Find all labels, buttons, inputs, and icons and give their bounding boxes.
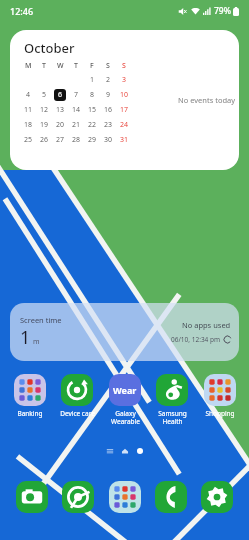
staticText: 27 bbox=[56, 135, 65, 145]
staticText: 15 bbox=[88, 105, 97, 115]
staticText: 4 bbox=[26, 90, 31, 100]
staticText: 23 bbox=[104, 120, 113, 130]
staticText: 21 bbox=[72, 120, 81, 130]
staticText: 14 bbox=[72, 105, 81, 115]
staticText: 25 bbox=[24, 135, 33, 145]
staticText: Device care bbox=[60, 409, 95, 418]
staticText: 9 bbox=[106, 90, 111, 100]
staticText: m bbox=[33, 337, 40, 347]
staticText: F bbox=[90, 61, 94, 71]
button[interactable]: Google folder bbox=[105, 477, 145, 517]
staticText: 29 bbox=[88, 135, 97, 145]
button[interactable]: Screen time bbox=[10, 303, 239, 361]
staticText: Shopping bbox=[205, 409, 235, 418]
staticText: T bbox=[74, 61, 78, 71]
button[interactable]: Device care bbox=[55, 374, 99, 418]
staticText: 30 bbox=[104, 135, 113, 145]
staticText: 6 bbox=[58, 90, 63, 100]
button[interactable]: Shopping bbox=[198, 374, 242, 418]
button[interactable]: Wear bbox=[103, 374, 147, 426]
button[interactable]: Chrome bbox=[58, 477, 98, 517]
button[interactable]: Samsung Health bbox=[150, 374, 194, 426]
staticText: 11 bbox=[24, 105, 33, 115]
button[interactable]: October bbox=[10, 30, 239, 170]
staticText: 12:46 bbox=[10, 5, 34, 17]
staticText: 26 bbox=[40, 135, 49, 145]
staticText: 5 bbox=[42, 90, 47, 100]
staticText: Samsung Health bbox=[158, 409, 187, 426]
staticText: 1 bbox=[90, 75, 95, 85]
staticText: 3 bbox=[122, 75, 127, 85]
button[interactable]: Camera bbox=[12, 477, 52, 517]
staticText: 19 bbox=[40, 120, 49, 130]
staticText: 20 bbox=[56, 120, 65, 130]
staticText: 31 bbox=[120, 135, 129, 145]
staticText: W bbox=[57, 61, 64, 71]
staticText: 2 bbox=[106, 75, 111, 85]
staticText: 06/10, 12:34 pm bbox=[171, 335, 221, 344]
staticText: Galaxy Wearable bbox=[111, 409, 140, 426]
other: App list bbox=[106, 447, 114, 455]
staticText: 22 bbox=[88, 120, 97, 130]
staticText: 16 bbox=[104, 105, 113, 115]
staticText: October bbox=[24, 39, 75, 57]
staticText: 8 bbox=[90, 90, 95, 100]
staticText: S bbox=[122, 61, 126, 71]
staticText: Banking bbox=[17, 409, 43, 418]
staticText: No events today bbox=[178, 95, 236, 105]
button[interactable]: Settings bbox=[197, 477, 237, 517]
staticText: 1 bbox=[20, 325, 31, 350]
other: Home bbox=[121, 447, 129, 455]
staticText: 13 bbox=[56, 105, 65, 115]
staticText: Screen time bbox=[20, 315, 62, 325]
staticText: 10 bbox=[120, 90, 129, 100]
staticText: 79% bbox=[214, 5, 231, 17]
staticText: 24 bbox=[120, 120, 129, 130]
staticText: M bbox=[25, 61, 32, 71]
staticText: 12 bbox=[40, 105, 49, 115]
button[interactable]: Banking bbox=[8, 374, 52, 418]
staticText: No apps used bbox=[182, 320, 231, 330]
staticText: 7 bbox=[74, 90, 79, 100]
staticText: 18 bbox=[24, 120, 33, 130]
staticText: 28 bbox=[72, 135, 81, 145]
staticText: Wear bbox=[113, 384, 137, 396]
button[interactable]: Phone bbox=[151, 477, 191, 517]
staticText: T bbox=[42, 61, 46, 71]
staticText: S bbox=[106, 61, 110, 71]
staticText: 17 bbox=[120, 105, 129, 115]
